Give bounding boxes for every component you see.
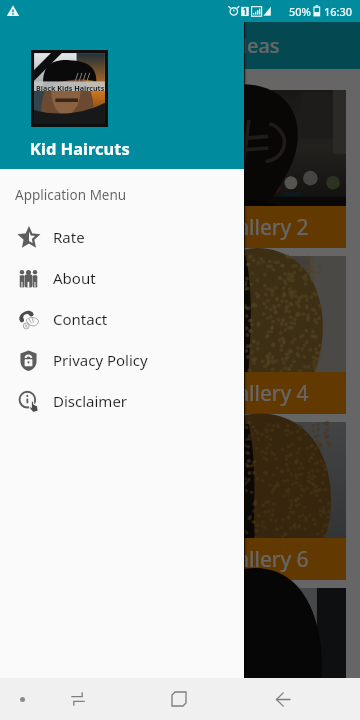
staticText: Gallery 6 (222, 545, 309, 574)
staticText: Gallery 8 (222, 704, 309, 720)
button[interactable]: Back (266, 683, 298, 715)
button[interactable]: Privacy Policy (0, 340, 244, 381)
button[interactable]: Rate (0, 217, 244, 258)
staticText: Application Menu (15, 186, 127, 204)
staticText: Black Kids Haircuts (36, 83, 105, 93)
staticText: Rate (53, 227, 85, 247)
staticText: Gallery 2 (222, 213, 309, 242)
button[interactable]: Recent apps (163, 683, 195, 715)
staticText: Kid Haircuts (30, 137, 130, 159)
button[interactable]: Split screen (62, 683, 94, 715)
button[interactable]: Gallery 6 (184, 422, 346, 580)
staticText: Gallery 3 (52, 379, 139, 408)
button[interactable]: Gallery 8 (184, 588, 346, 720)
button[interactable]: Gallery 7 (14, 588, 176, 720)
staticText: Gallery 7 (52, 704, 139, 720)
staticText: Contact (53, 309, 108, 329)
staticText: Gallery 1 (52, 213, 139, 242)
staticText: 16:30 (324, 4, 353, 19)
button[interactable]: Contact (0, 299, 244, 340)
staticText: Disclaimer (53, 391, 128, 411)
staticText: 50% (289, 4, 311, 19)
button[interactable]: Disclaimer (0, 381, 244, 422)
button[interactable]: Gallery 2 (184, 90, 346, 248)
button[interactable]: Assistant (6, 683, 38, 715)
staticText: Gallery 4 (222, 379, 309, 408)
button[interactable]: Gallery 3 (14, 256, 176, 414)
button[interactable]: Gallery 1 (14, 90, 176, 248)
staticText: Privacy Policy (53, 350, 148, 370)
staticText: Kid Haircuts Ideas (107, 32, 280, 59)
button[interactable]: About (0, 258, 244, 299)
staticText: About (53, 268, 96, 288)
button[interactable]: Gallery 4 (184, 256, 346, 414)
